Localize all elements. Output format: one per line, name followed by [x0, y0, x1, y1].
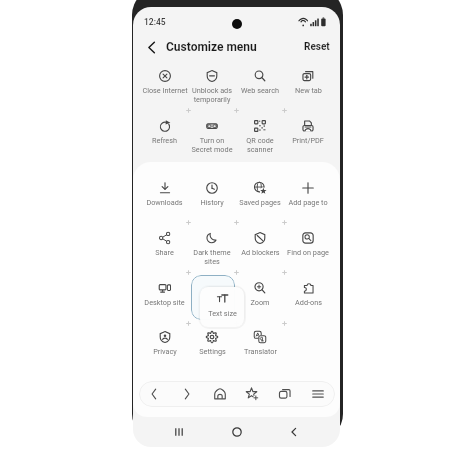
button[interactable]: Settings	[188, 328, 236, 359]
button[interactable]: Add page to	[284, 179, 332, 210]
staticText: Translator	[244, 347, 277, 356]
button[interactable]: Close Internet	[141, 67, 188, 98]
staticText: Saved pages	[239, 198, 281, 207]
button[interactable]: Back	[141, 37, 161, 57]
staticText: Zoom	[250, 298, 270, 307]
button[interactable]: Dark theme sites	[188, 229, 236, 269]
staticText: Ad blockers	[241, 248, 280, 257]
button[interactable]: Print/PDF	[284, 117, 332, 148]
staticText: History	[200, 198, 224, 207]
button[interactable]: Reset	[301, 37, 333, 57]
button[interactable]: Translator	[236, 328, 284, 359]
button[interactable]: Find on page	[284, 229, 332, 260]
button[interactable]: Menu	[305, 381, 331, 407]
staticText: 12:45	[144, 17, 166, 27]
staticText: Unblock ads temporarily	[192, 86, 232, 104]
staticText: Downloads	[146, 198, 183, 207]
staticText: Text size	[208, 309, 237, 318]
staticText: Customize menu	[166, 40, 257, 54]
button[interactable]: Ad blockers	[236, 229, 284, 260]
button[interactable]: History	[188, 179, 236, 210]
staticText: Find on page	[287, 248, 329, 257]
button[interactable]: Tabs	[272, 381, 298, 407]
button[interactable]: Privacy	[141, 328, 188, 359]
button[interactable]: Refresh	[141, 117, 188, 148]
button[interactable]: New tab	[284, 67, 332, 98]
button[interactable]: Unblock ads temporarily	[188, 67, 236, 107]
staticText: New tab	[295, 86, 322, 95]
button[interactable]: Turn on Secret mode	[188, 117, 236, 157]
staticText: Web search	[241, 86, 279, 95]
button[interactable]: Text size	[200, 287, 244, 327]
staticText: Settings	[199, 347, 226, 356]
button[interactable]: Downloads	[141, 179, 188, 210]
button[interactable]: Zoom	[236, 279, 284, 310]
staticText: Reset	[304, 41, 330, 53]
button[interactable]: Back	[141, 381, 167, 407]
button[interactable]: Desktop site	[141, 279, 188, 310]
button[interactable]: Home	[207, 381, 233, 407]
button[interactable]: Recents	[169, 422, 189, 442]
staticText: Add page to	[288, 198, 328, 207]
staticText: Print/PDF	[292, 136, 324, 145]
staticText: QR code scanner	[246, 136, 274, 154]
button[interactable]: Add-ons	[284, 279, 332, 310]
staticText: Privacy	[153, 347, 177, 356]
button[interactable]: Forward	[174, 381, 200, 407]
staticText: Close Internet	[142, 86, 188, 95]
staticText: Add-ons	[295, 298, 322, 307]
button[interactable]: Home	[227, 422, 247, 442]
staticText: Dark theme sites	[193, 248, 231, 266]
button[interactable]: Back	[284, 422, 304, 442]
staticText: Share	[155, 248, 174, 257]
staticText: Turn on Secret mode	[191, 136, 233, 154]
staticText: Desktop site	[144, 298, 185, 307]
button[interactable]: Share	[141, 229, 188, 260]
button[interactable]: Saved pages	[236, 179, 284, 210]
staticText: Refresh	[152, 136, 177, 145]
button[interactable]: QR code scanner	[236, 117, 284, 157]
button[interactable]: Web search	[236, 67, 284, 98]
button[interactable]: Bookmarks	[239, 381, 265, 407]
